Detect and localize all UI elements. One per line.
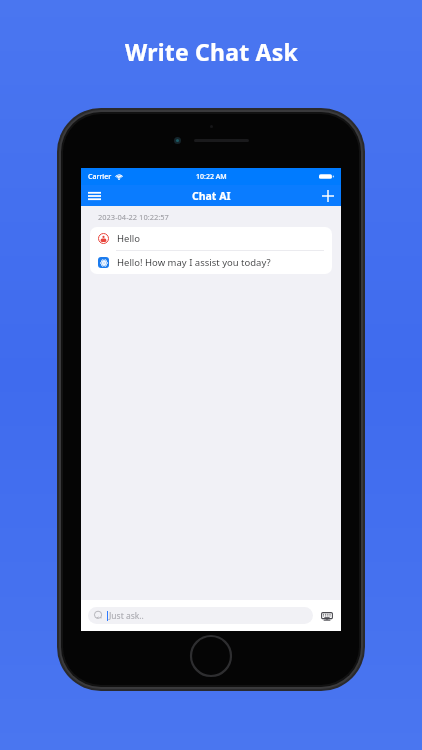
staticText: Carrier — [88, 172, 112, 182]
button[interactable]: Hello! How may I assist you today? — [90, 251, 332, 274]
button[interactable]: Just ask.. — [88, 607, 313, 624]
button[interactable]: Hello — [90, 227, 332, 250]
staticText: 2023-04-22 10:22:57 — [98, 212, 169, 222]
staticText: Hello! How may I assist you today? — [117, 256, 271, 269]
staticText: Chat AI — [192, 189, 231, 203]
staticText: Hello — [117, 232, 141, 245]
button[interactable]: New chat — [315, 185, 341, 206]
staticText: Just ask.. — [109, 610, 144, 622]
button[interactable]: Keyboard — [320, 609, 334, 623]
staticText: 10:22 AM — [196, 172, 227, 182]
staticText: Write Chat Ask — [125, 36, 298, 67]
button[interactable]: Menu — [81, 185, 107, 206]
